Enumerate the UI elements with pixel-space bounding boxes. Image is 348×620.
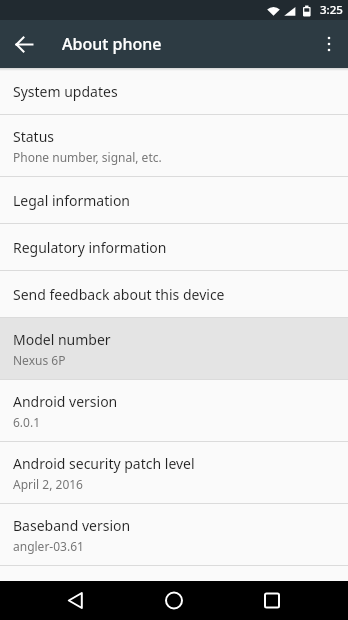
staticText: System updates <box>13 82 118 101</box>
staticText: Android version <box>13 392 118 411</box>
button[interactable]: Android security patch level <box>0 442 348 503</box>
staticText: About phone <box>62 33 162 55</box>
button[interactable] <box>0 581 116 620</box>
button[interactable]: Baseband version <box>0 504 348 565</box>
button[interactable]: Legal information <box>0 177 348 223</box>
staticText: 3:25 <box>320 2 343 18</box>
staticText: Model number <box>13 330 111 349</box>
staticText: Baseband version <box>13 516 131 535</box>
button[interactable] <box>116 581 232 620</box>
staticText: 6.0.1 <box>13 414 41 430</box>
button[interactable]: Status <box>0 115 348 176</box>
button[interactable]: Model number <box>0 318 348 379</box>
button[interactable]: System updates <box>0 68 348 114</box>
button[interactable] <box>232 581 348 620</box>
staticText: Android security patch level <box>13 454 195 473</box>
staticText: Phone number, signal, etc. <box>13 149 162 165</box>
button[interactable]: Android version <box>0 380 348 441</box>
staticText: Legal information <box>13 191 131 210</box>
button[interactable] <box>8 28 40 60</box>
staticText: Send feedback about this device <box>13 285 225 304</box>
staticText: Regulatory information <box>13 238 167 257</box>
button[interactable]: Regulatory information <box>0 224 348 270</box>
button[interactable]: Send feedback about this device <box>0 271 348 317</box>
staticText: angler-03.61 <box>13 538 84 554</box>
staticText: Nexus 6P <box>13 352 66 368</box>
button[interactable] <box>317 32 341 56</box>
staticText: April 2, 2016 <box>13 476 83 492</box>
staticText: Status <box>13 127 55 146</box>
